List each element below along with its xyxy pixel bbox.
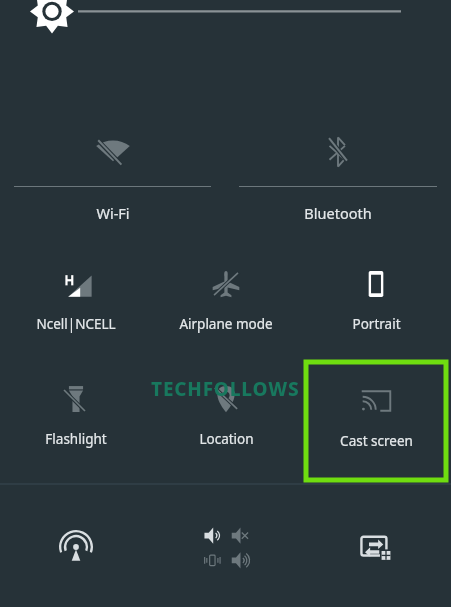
staticText: Location: [199, 430, 254, 448]
button[interactable]: Airplane mode: [151, 245, 301, 360]
button[interactable]: Data usage: [301, 488, 451, 607]
staticText: Portrait: [352, 315, 401, 333]
staticText: Airplane mode: [179, 315, 273, 333]
staticText: Cast screen: [340, 432, 413, 450]
button[interactable]: Hotspot: [0, 488, 151, 607]
staticText: Ncell|NCELL: [36, 315, 116, 333]
staticText: Bluetooth: [304, 203, 372, 223]
button[interactable]: Location: [151, 360, 301, 482]
button[interactable]: Portrait: [301, 245, 451, 360]
staticText: Flashlight: [45, 430, 107, 448]
button[interactable]: Ncell|NCELL: [0, 245, 151, 360]
staticText: Wi-Fi: [96, 203, 130, 223]
staticText: TECHFOLLOWS: [151, 376, 300, 402]
button[interactable]: Wi-Fi: [0, 110, 225, 245]
button[interactable]: Bluetooth: [225, 110, 451, 245]
button[interactable]: Cast screen: [306, 362, 446, 480]
button[interactable]: Brightness: [0, 0, 451, 110]
button[interactable]: Flashlight: [0, 360, 151, 482]
button[interactable]: Sound settings: [151, 488, 301, 607]
